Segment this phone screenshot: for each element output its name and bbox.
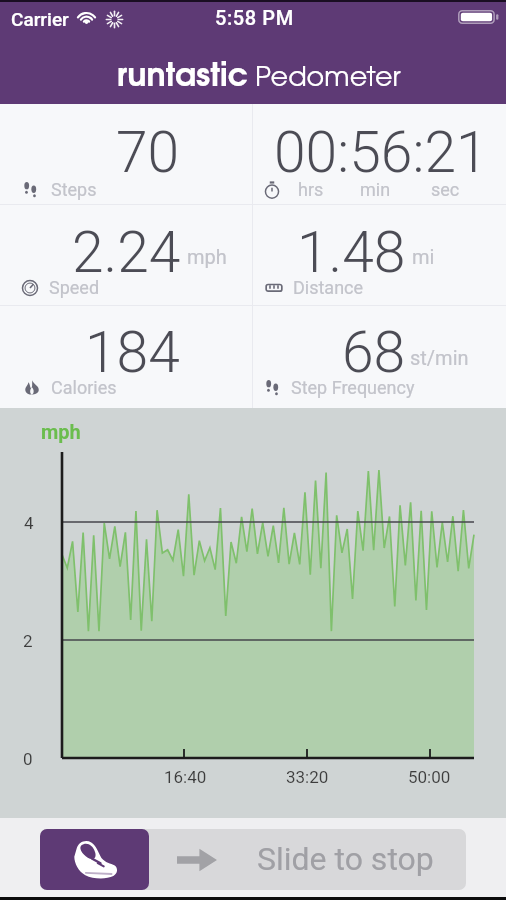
staticText: 5:58 PM	[215, 6, 294, 29]
staticText: 00:56:21	[274, 119, 488, 186]
staticText: Speed	[49, 277, 100, 298]
staticText: 50:00	[408, 767, 451, 787]
staticText: 184	[85, 319, 180, 386]
staticText: 68	[342, 319, 406, 386]
staticText: mi	[412, 245, 435, 268]
staticText: 33:20	[286, 767, 329, 787]
staticText: 4	[24, 513, 34, 533]
staticText: Step Frequency	[291, 377, 415, 398]
staticText: Calories	[51, 377, 117, 398]
staticText: 0	[23, 749, 33, 769]
staticText: 1.48	[297, 219, 406, 286]
staticText: Steps	[51, 179, 97, 200]
staticText: st/min	[410, 346, 469, 369]
button[interactable]: Stop tracking	[40, 829, 149, 890]
staticText: 2	[23, 631, 33, 651]
staticText: Pedometer	[255, 66, 401, 91]
staticText: hrs	[298, 179, 324, 200]
staticText: Carrier	[11, 8, 69, 30]
staticText: mph	[187, 245, 227, 268]
staticText: 2.24	[72, 219, 181, 286]
staticText: 70	[116, 119, 180, 186]
button[interactable]: Slide to stop	[40, 829, 466, 890]
staticText: Slide to stop	[257, 840, 434, 878]
staticText: sec	[431, 179, 460, 200]
staticText: runtastic	[117, 62, 249, 92]
staticText: 16:40	[164, 767, 207, 787]
staticText: mph	[41, 420, 81, 443]
staticText: Distance	[293, 277, 364, 298]
staticText: min	[360, 179, 391, 200]
